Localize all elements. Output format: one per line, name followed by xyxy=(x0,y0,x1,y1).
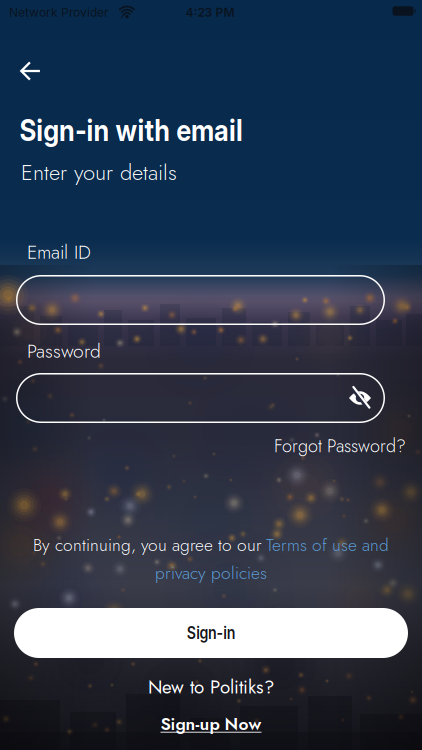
button[interactable]: Sign-in xyxy=(14,608,408,658)
staticText: Forgot Password? xyxy=(274,433,406,459)
staticText: privacy policies xyxy=(155,560,267,585)
staticText: Password xyxy=(27,337,101,365)
button[interactable]: Back xyxy=(10,51,50,91)
staticText: Sign-in with email xyxy=(19,112,273,148)
staticText: Enter your details xyxy=(21,156,177,188)
staticText: Email ID xyxy=(27,238,91,266)
button[interactable]: Terms of use and xyxy=(266,532,389,557)
button[interactable]: Password xyxy=(16,373,385,423)
staticText: 4:23 PM xyxy=(185,5,234,20)
button[interactable]: Sign-up Now xyxy=(158,709,263,738)
staticText: Network Provider xyxy=(9,5,109,19)
staticText: Sign-up Now xyxy=(160,711,261,736)
staticText: Terms of use and xyxy=(266,532,389,557)
button[interactable]: Forgot Password? xyxy=(274,433,406,459)
button[interactable]: Email ID xyxy=(16,275,385,325)
staticText: By continuing, you agree to our xyxy=(33,532,262,557)
staticText: Sign-in xyxy=(182,623,239,643)
button[interactable]: privacy policies xyxy=(155,560,267,585)
button[interactable]: Show password xyxy=(341,381,379,415)
staticText: New to Politiks? xyxy=(148,673,274,700)
